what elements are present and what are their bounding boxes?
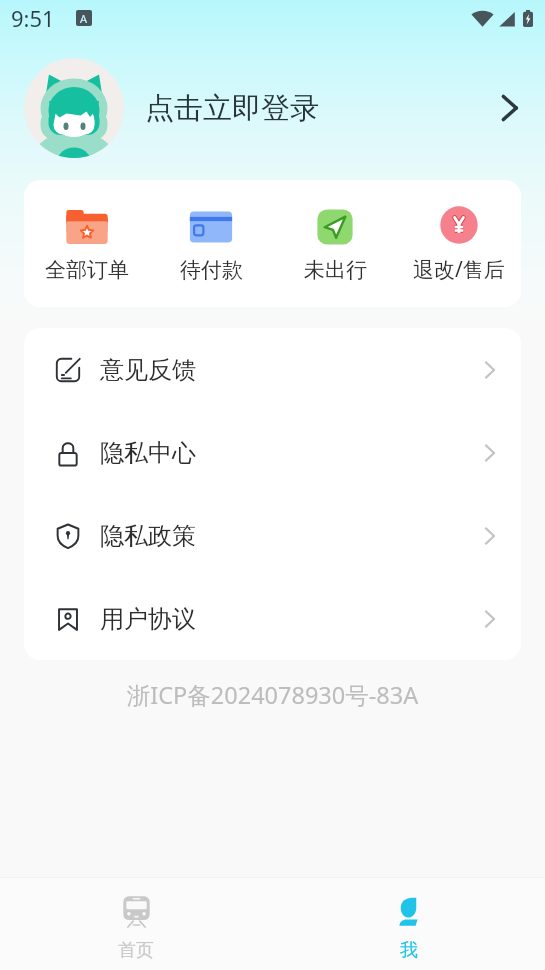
button[interactable]: 意见反馈 bbox=[24, 328, 521, 411]
staticText: 隐私中心 bbox=[100, 438, 196, 468]
staticText: 浙ICP备2024078930号-83A bbox=[0, 679, 545, 711]
button[interactable]: 点击立即登录 bbox=[0, 44, 545, 172]
button[interactable]: 未出行 bbox=[273, 180, 397, 307]
staticText: 意见反馈 bbox=[100, 355, 196, 385]
staticText: 全部订单 bbox=[45, 257, 129, 283]
staticText: 9:51 bbox=[11, 3, 55, 33]
button[interactable]: 退改/售后 bbox=[397, 180, 521, 307]
button[interactable]: 我 bbox=[272, 878, 545, 970]
staticText: A bbox=[80, 11, 88, 26]
staticText: 退改/售后 bbox=[413, 255, 505, 284]
staticText: 我 bbox=[400, 939, 418, 962]
staticText: 点击立即登录 bbox=[145, 90, 319, 127]
button[interactable]: 隐私政策 bbox=[24, 494, 521, 577]
button[interactable]: 隐私中心 bbox=[24, 411, 521, 494]
button[interactable]: 全部订单 bbox=[24, 180, 149, 307]
button[interactable]: 首页 bbox=[0, 878, 272, 970]
staticText: 未出行 bbox=[304, 257, 367, 283]
staticText: 首页 bbox=[118, 939, 154, 962]
staticText: 待付款 bbox=[180, 257, 243, 283]
button[interactable]: 待付款 bbox=[149, 180, 273, 307]
button[interactable]: 用户协议 bbox=[24, 577, 521, 660]
staticText: 隐私政策 bbox=[100, 521, 196, 551]
staticText: 用户协议 bbox=[100, 604, 196, 634]
